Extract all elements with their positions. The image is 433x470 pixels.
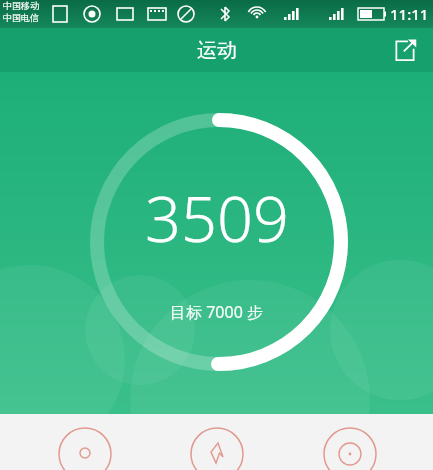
staticText: 中国电信 [3, 12, 39, 23]
staticText: 运动 [197, 38, 237, 63]
button[interactable]: Calories [185, 422, 249, 470]
staticText: 目标 7000 步 [170, 301, 263, 323]
button[interactable]: Share [385, 30, 425, 70]
staticText: 11:11 [390, 4, 429, 24]
button[interactable]: Distance [53, 422, 117, 470]
button[interactable]: Sleep [318, 422, 382, 470]
staticText: 3509 [145, 175, 289, 261]
staticText: 中国移动 [3, 0, 39, 11]
